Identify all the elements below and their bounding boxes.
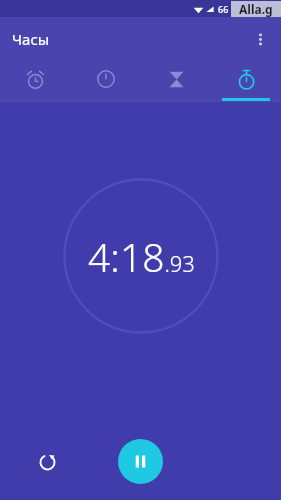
staticText: 4:18.93 (88, 230, 195, 283)
button[interactable]: Alarm (0, 60, 71, 98)
staticText: 66 (218, 3, 229, 15)
staticText: Alla.g (239, 1, 273, 17)
button[interactable]: Pause (118, 439, 163, 484)
button[interactable]: More options (245, 24, 275, 54)
staticText: Часы (12, 29, 50, 49)
button[interactable]: Stopwatch (211, 60, 281, 98)
button[interactable]: Timer (141, 60, 211, 98)
button[interactable]: World clock (71, 60, 141, 98)
button[interactable]: Reset (26, 440, 68, 482)
